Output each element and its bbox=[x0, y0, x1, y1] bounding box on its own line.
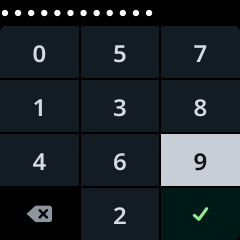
staticText: 3 bbox=[113, 91, 127, 123]
staticText: 0 bbox=[32, 37, 46, 69]
button[interactable]: 2 bbox=[81, 188, 159, 240]
button[interactable]: 7 bbox=[161, 26, 240, 78]
staticText: 9 bbox=[193, 145, 207, 177]
staticText: 4 bbox=[32, 145, 46, 177]
button[interactable]: 0 bbox=[0, 26, 79, 78]
staticText: 2 bbox=[113, 199, 127, 231]
button[interactable]: 1 bbox=[0, 80, 79, 132]
button[interactable]: Delete bbox=[0, 188, 79, 240]
button[interactable]: 3 bbox=[81, 80, 159, 132]
button[interactable]: Confirm bbox=[161, 188, 240, 240]
button[interactable]: 5 bbox=[81, 26, 159, 78]
staticText: 8 bbox=[193, 91, 207, 123]
button[interactable]: 4 bbox=[0, 134, 79, 186]
button[interactable]: 6 bbox=[81, 134, 159, 186]
button[interactable]: 9 bbox=[161, 134, 240, 186]
staticText: 1 bbox=[32, 91, 46, 123]
staticText: 7 bbox=[193, 37, 207, 69]
staticText: 5 bbox=[113, 37, 127, 69]
staticText: 6 bbox=[113, 145, 127, 177]
button[interactable]: 8 bbox=[161, 80, 240, 132]
